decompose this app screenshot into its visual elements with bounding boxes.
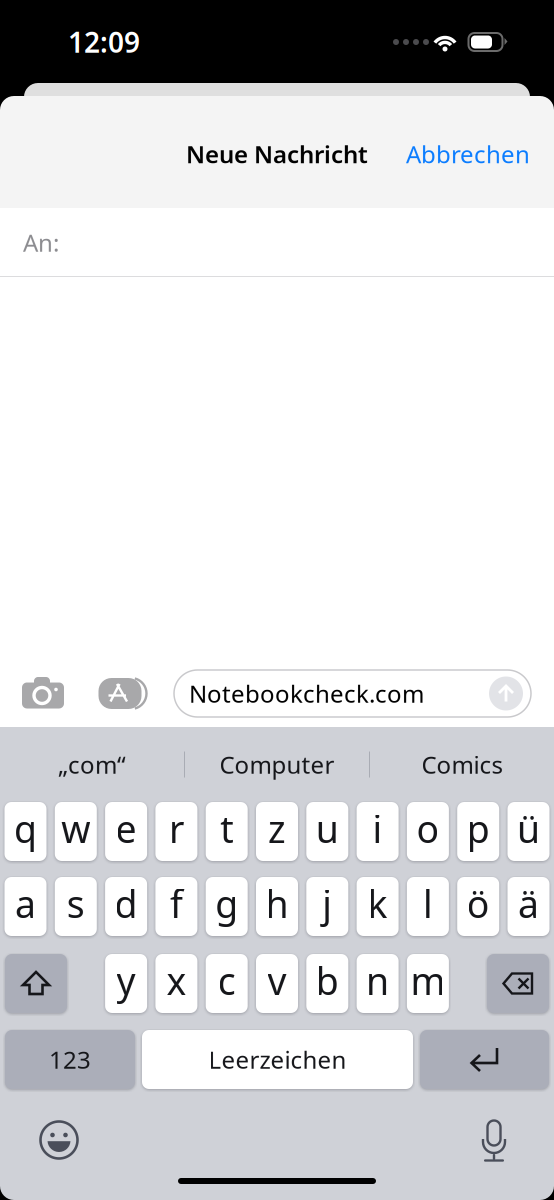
button[interactable]: b (306, 954, 348, 1013)
staticText: „com“ (58, 749, 126, 780)
staticText: r (169, 804, 184, 853)
button[interactable]: o (407, 802, 449, 861)
button[interactable]: f (155, 877, 197, 936)
button[interactable]: r (155, 802, 197, 861)
staticText: Comics (421, 749, 502, 780)
staticText: k (368, 879, 388, 928)
button[interactable]: „com“ (0, 738, 184, 790)
staticText: p (467, 804, 490, 853)
staticText: i (373, 804, 383, 853)
button[interactable]: p (457, 802, 499, 861)
staticText: w (61, 804, 90, 853)
staticText: t (220, 804, 233, 853)
staticText: z (268, 804, 286, 853)
button[interactable]: Kamera (17, 667, 69, 719)
staticText: 123 (49, 1044, 91, 1075)
button[interactable]: q (4, 802, 46, 861)
staticText: f (170, 879, 183, 928)
button[interactable]: Abbrechen (394, 127, 542, 181)
staticText: h (265, 879, 288, 928)
button[interactable]: Computer (185, 738, 369, 790)
button[interactable]: 123 (5, 1030, 135, 1089)
staticText: u (316, 804, 339, 853)
staticText: Abbrechen (406, 138, 530, 170)
button[interactable]: d (105, 877, 147, 936)
staticText: Leerzeichen (208, 1044, 346, 1075)
staticText: Notebookcheck.com (189, 678, 424, 709)
button[interactable]: u (306, 802, 348, 861)
staticText: a (15, 879, 36, 928)
button[interactable]: i (357, 802, 399, 861)
staticText: ö (467, 879, 490, 928)
staticText: d (115, 879, 138, 928)
button[interactable]: Diktieren (467, 1113, 521, 1167)
staticText: v (267, 956, 286, 1005)
staticText: c (218, 956, 236, 1005)
button[interactable]: Leerzeichen (142, 1030, 413, 1089)
button[interactable]: Comics (370, 738, 554, 790)
staticText: x (166, 956, 186, 1005)
button[interactable]: Apps (92, 667, 148, 719)
staticText: ä (518, 879, 539, 928)
staticText: e (116, 804, 137, 853)
button[interactable]: Löschen (487, 954, 549, 1013)
button[interactable]: Eingabe (420, 1030, 549, 1089)
button[interactable]: Umschalt (5, 954, 67, 1013)
staticText: b (316, 956, 339, 1005)
button[interactable]: y (105, 954, 147, 1013)
button[interactable]: j (306, 877, 348, 936)
button[interactable]: ä (507, 877, 549, 936)
button[interactable]: t (206, 802, 248, 861)
staticText: j (322, 879, 332, 928)
button[interactable]: m (407, 954, 449, 1013)
staticText: ü (517, 804, 540, 853)
staticText: m (410, 956, 445, 1005)
button[interactable]: s (55, 877, 97, 936)
staticText: n (366, 956, 389, 1005)
staticText: o (416, 804, 439, 853)
staticText: An: (23, 227, 59, 258)
button[interactable]: v (256, 954, 298, 1013)
button[interactable]: x (155, 954, 197, 1013)
button[interactable]: z (256, 802, 298, 861)
button[interactable]: l (407, 877, 449, 936)
button[interactable]: w (55, 802, 97, 861)
button[interactable]: Emoji (32, 1113, 86, 1167)
staticText: Neue Nachricht (186, 138, 368, 170)
button[interactable]: Senden (486, 671, 526, 715)
staticText: 12:09 (68, 23, 140, 61)
button[interactable]: a (4, 877, 46, 936)
staticText: l (423, 879, 433, 928)
button[interactable]: g (206, 877, 248, 936)
button[interactable]: k (357, 877, 399, 936)
staticText: y (117, 956, 136, 1005)
button[interactable]: e (105, 802, 147, 861)
button[interactable]: c (206, 954, 248, 1013)
button[interactable]: n (357, 954, 399, 1013)
staticText: g (215, 879, 238, 928)
staticText: s (67, 879, 85, 928)
button[interactable]: h (256, 877, 298, 936)
button[interactable]: ü (507, 802, 549, 861)
staticText: q (14, 804, 37, 853)
staticText: Computer (219, 749, 334, 780)
button[interactable]: ö (457, 877, 499, 936)
